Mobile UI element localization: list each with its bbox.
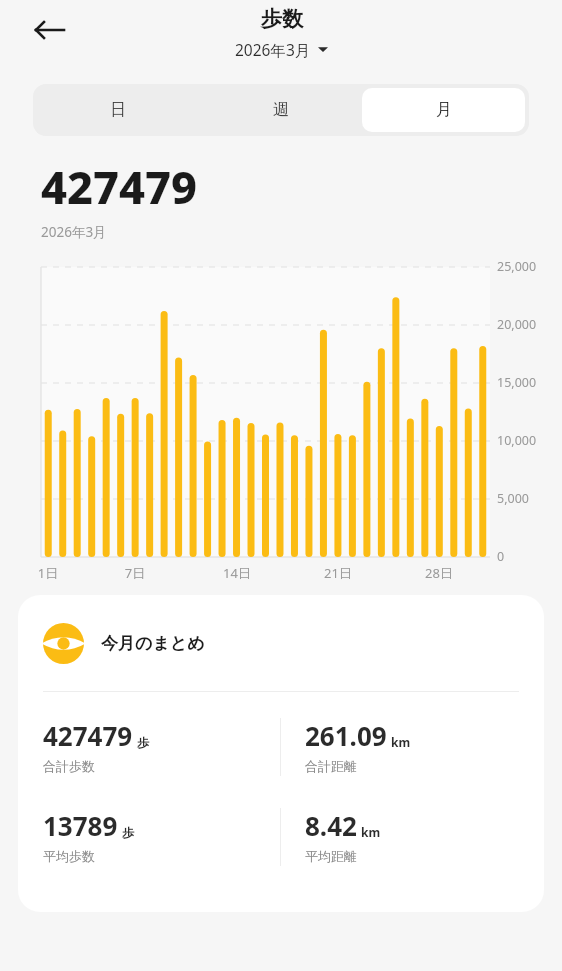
staticText: 13789 bbox=[43, 808, 118, 843]
staticText: 月 bbox=[436, 100, 452, 120]
staticText: 2026年3月 bbox=[235, 39, 311, 60]
staticText: 5,000 bbox=[497, 490, 529, 507]
staticText: 合計距離 bbox=[305, 758, 357, 774]
staticText: 週 bbox=[273, 100, 289, 120]
staticText: 21日 bbox=[321, 564, 355, 582]
staticText: 平均歩数 bbox=[43, 848, 95, 864]
button[interactable]: 月 bbox=[362, 88, 525, 132]
staticText: 261.09 bbox=[305, 718, 387, 753]
staticText: 歩 bbox=[122, 825, 134, 840]
staticText: 今月のまとめ bbox=[101, 633, 205, 654]
staticText: 25,000 bbox=[497, 258, 537, 275]
staticText: 2026年3月 bbox=[41, 223, 107, 241]
staticText: 20,000 bbox=[497, 316, 537, 333]
staticText: 14日 bbox=[220, 564, 254, 582]
button[interactable]: 週 bbox=[199, 88, 362, 132]
button[interactable]: 2026年3月 bbox=[235, 39, 328, 60]
staticText: 7日 bbox=[118, 564, 152, 582]
staticText: 15,000 bbox=[497, 374, 537, 391]
staticText: 平均距離 bbox=[305, 848, 357, 864]
button[interactable]: 今月のまとめ bbox=[18, 595, 544, 912]
staticText: 427479 bbox=[41, 156, 198, 217]
staticText: 8.42 bbox=[305, 808, 357, 843]
staticText: km bbox=[361, 824, 381, 840]
staticText: 日 bbox=[110, 100, 126, 120]
staticText: 427479 bbox=[43, 718, 133, 753]
staticText: 10,000 bbox=[497, 432, 537, 449]
button[interactable]: 日 bbox=[37, 88, 199, 132]
button[interactable]: Back bbox=[26, 6, 74, 54]
staticText: km bbox=[391, 734, 411, 750]
staticText: 合計歩数 bbox=[43, 758, 95, 774]
staticText: 0 bbox=[497, 548, 505, 565]
staticText: 歩 bbox=[137, 735, 149, 750]
staticText: 28日 bbox=[422, 564, 456, 582]
staticText: 1日 bbox=[31, 564, 65, 582]
staticText: 歩数 bbox=[261, 6, 303, 32]
